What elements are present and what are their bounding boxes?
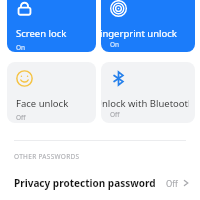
staticText: Off [166, 178, 178, 189]
other: Fingerprint unlock [110, 0, 127, 17]
staticText: Face unlock [16, 97, 69, 110]
other: Unlock with Bluetooth [110, 70, 127, 87]
button[interactable]: Unlock with Bluetooth [101, 62, 195, 123]
staticText: On [110, 40, 120, 49]
other: Face unlock [16, 70, 33, 87]
staticText: On [16, 43, 26, 52]
staticText: Off [16, 113, 26, 122]
staticText: Privacy protection password [14, 176, 156, 190]
button[interactable]: Fingerprint unlock [101, 0, 195, 52]
staticText: Unlock with Bluetooth [101, 97, 189, 109]
button[interactable]: Privacy protection password [0, 170, 200, 196]
staticText: Off [110, 110, 120, 119]
button[interactable]: Face unlock [7, 62, 96, 123]
other: Open [182, 179, 190, 187]
button[interactable]: Screen lock [7, 0, 96, 52]
staticText: Screen lock [16, 27, 67, 40]
staticText: Fingerprint unlock [101, 27, 177, 39]
staticText: OTHER PASSWORDS [14, 152, 80, 161]
other: Screen lock [16, 0, 33, 17]
